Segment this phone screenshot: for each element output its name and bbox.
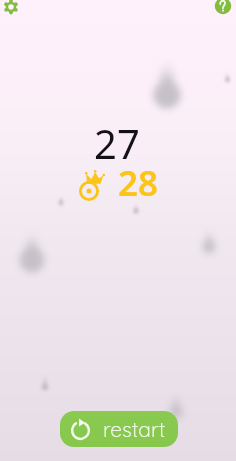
button[interactable]: Settings [0,0,22,22]
button[interactable]: restart [60,411,178,447]
button[interactable]: Help [214,0,236,22]
staticText: 27 [94,116,140,170]
staticText: restart [103,416,166,442]
staticText: 28 [118,159,159,207]
